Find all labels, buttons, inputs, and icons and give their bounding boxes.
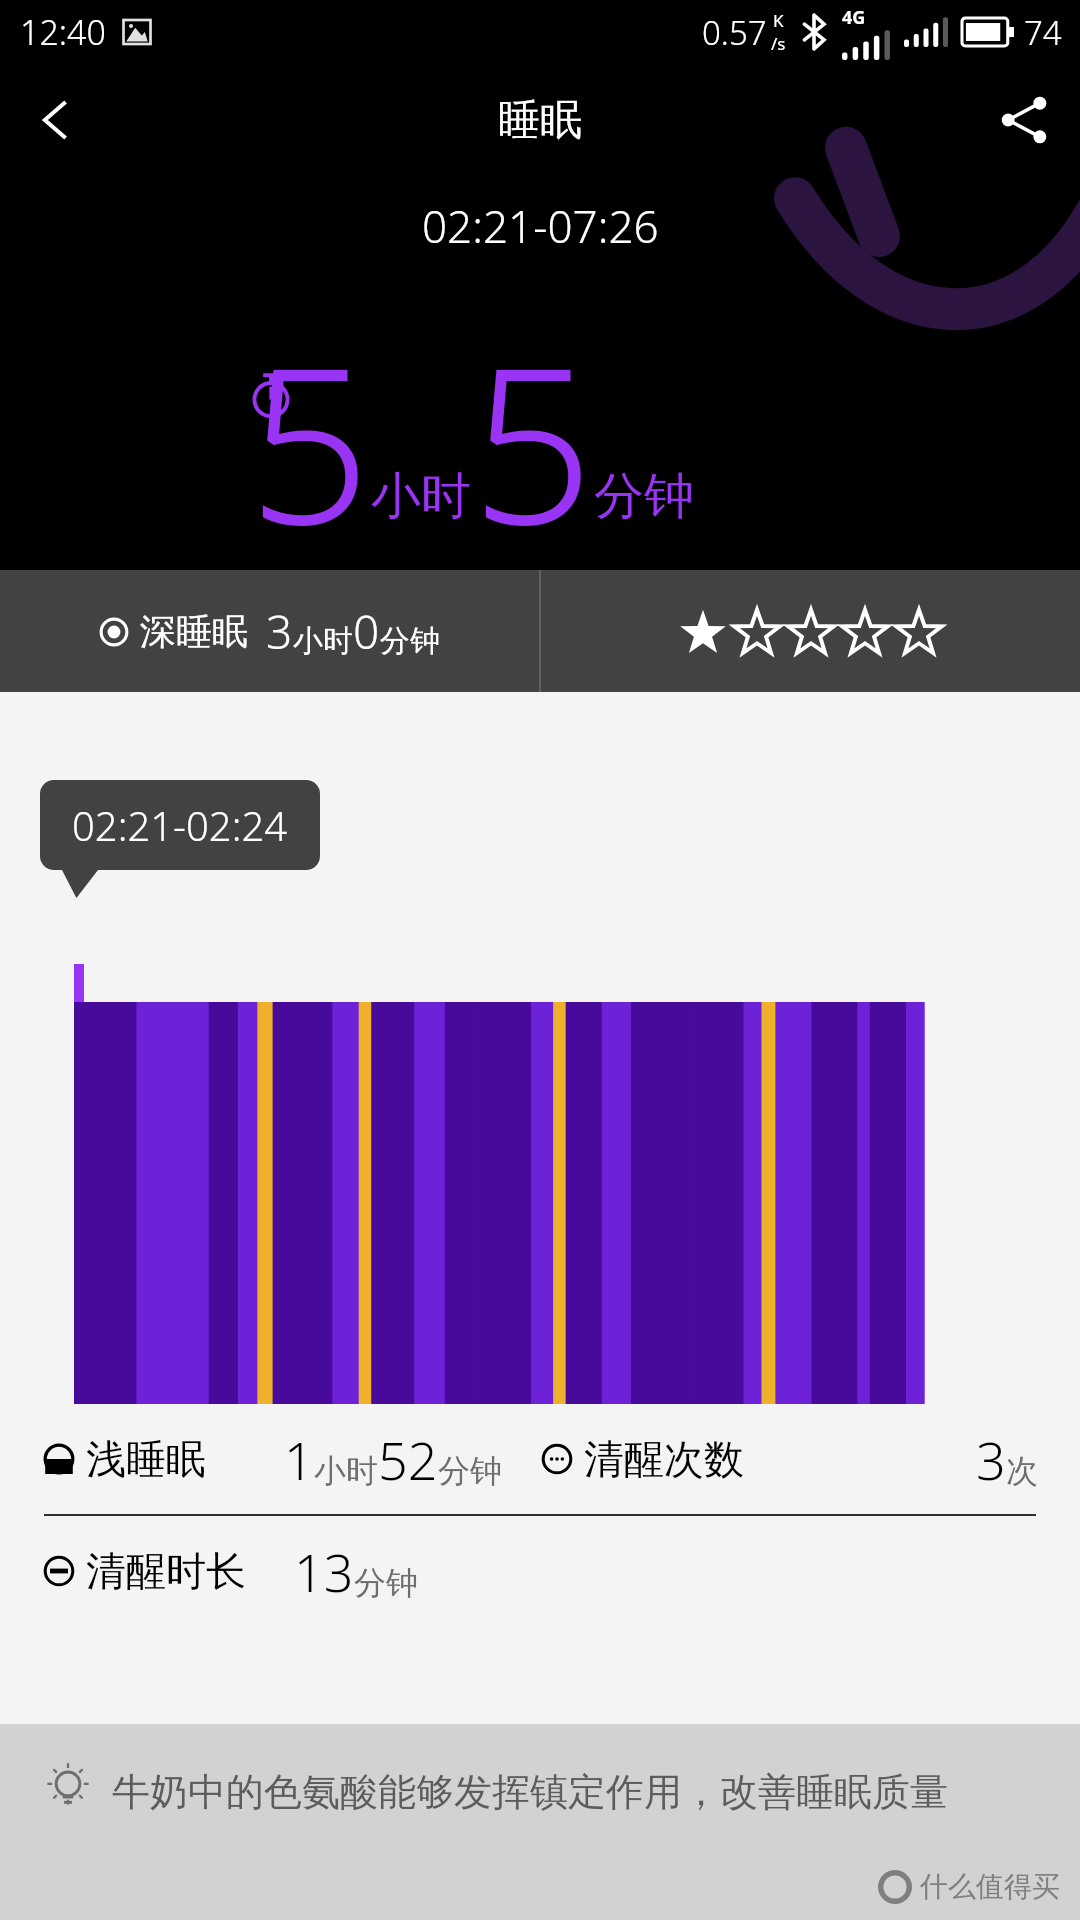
staticText: /s [771, 32, 786, 55]
staticText: 牛奶中的色氨酸能够发挥镇定作用，改善睡眠质量 [112, 1768, 948, 1816]
staticText: 74 [1024, 10, 1062, 55]
staticText: 5 [248, 294, 371, 570]
staticText: 52 [378, 1424, 438, 1495]
button[interactable]: 深睡眠 [0, 570, 539, 692]
staticText: 小时 [293, 622, 353, 660]
staticText: 小时 [371, 465, 471, 528]
staticText: 分钟 [438, 1451, 502, 1491]
staticText: 0 [353, 600, 380, 663]
staticText: 5 [471, 294, 594, 570]
staticText: 睡眠 [498, 94, 582, 147]
button[interactable]: 牛奶中的色氨酸能够发挥镇定作用，改善睡眠质量 [0, 1724, 1080, 1920]
staticText: 浅睡眠 [86, 1434, 206, 1484]
staticText: 什么值得买 [920, 1869, 1060, 1904]
staticText: 12:40 [20, 9, 106, 55]
button[interactable]: 清醒时长 [0, 1516, 1080, 1626]
staticText: 02:21-02:24 [72, 798, 288, 852]
staticText: 4G [842, 5, 866, 30]
staticText: 13 [294, 1536, 354, 1607]
staticText: K [773, 9, 784, 32]
button[interactable]: Sleep quality 1 of 5 stars [541, 570, 1080, 692]
staticText: 1 [284, 1424, 314, 1495]
staticText: 3 [266, 600, 293, 663]
staticText: 02:21-07:26 [422, 196, 659, 256]
staticText: 清醒时长 [86, 1546, 246, 1596]
button[interactable]: 02:21-02:24 [40, 780, 320, 870]
button[interactable]: Back [0, 64, 112, 176]
staticText: 次 [1006, 1451, 1038, 1491]
staticText: 3 [976, 1424, 1006, 1495]
staticText: 分钟 [380, 622, 440, 660]
button[interactable]: Share [968, 64, 1080, 176]
button[interactable]: 浅睡眠 [0, 1404, 1080, 1514]
staticText: 深睡眠 [140, 609, 248, 654]
staticText: 分钟 [354, 1563, 418, 1603]
staticText: 清醒次数 [584, 1434, 744, 1484]
staticText: 小时 [314, 1451, 378, 1491]
staticText: 0.57 [702, 10, 767, 55]
staticText: 分钟 [594, 465, 694, 528]
